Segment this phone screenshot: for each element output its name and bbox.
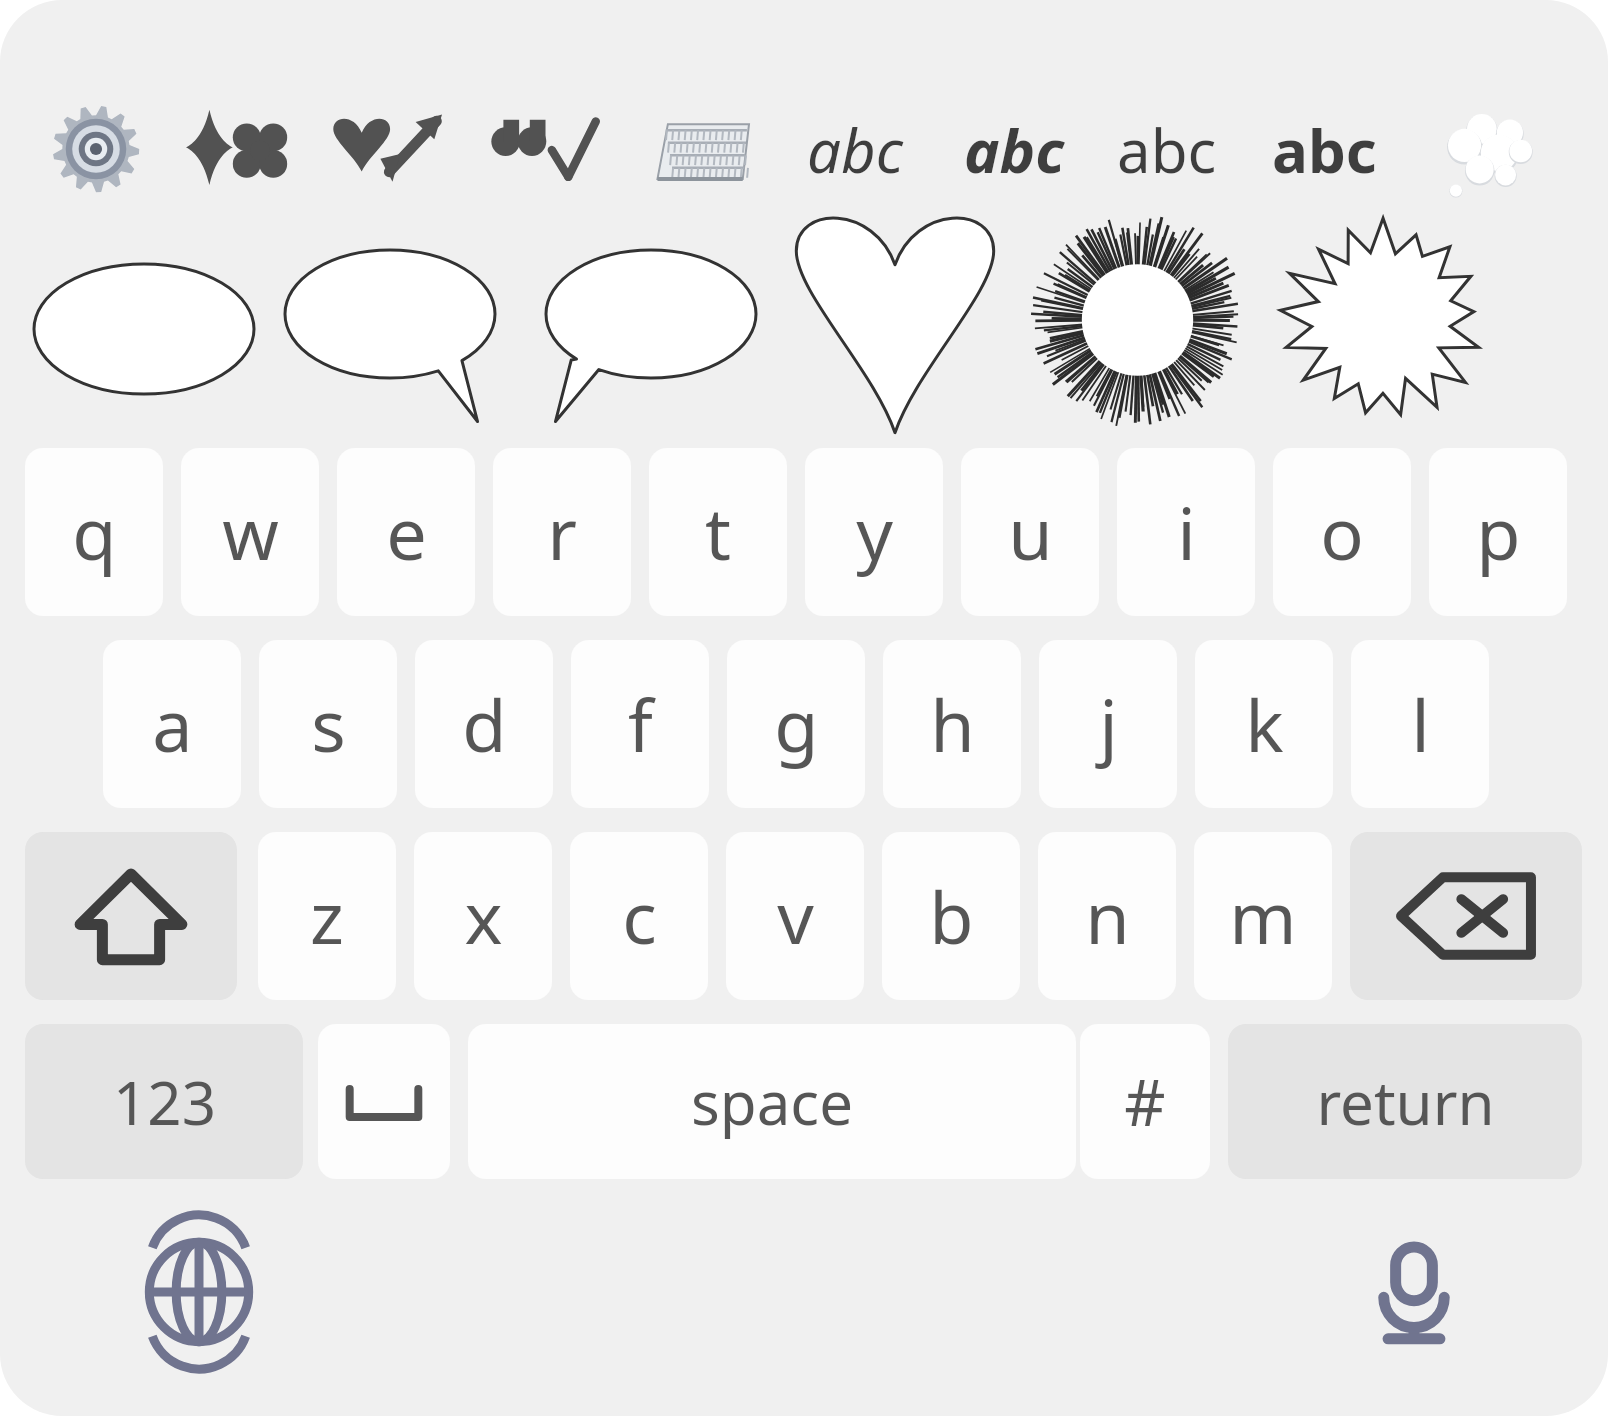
button[interactable]: i [1117,448,1255,616]
staticText: y [856,483,893,581]
button[interactable]: v [726,832,864,1000]
staticText: d [462,675,507,773]
button[interactable]: s [259,640,397,808]
button[interactable]: o [1273,448,1411,616]
staticText: k [1245,675,1284,773]
button[interactable]: Keyboard layout [645,112,749,188]
button[interactable]: abc [800,105,910,195]
button[interactable]: Grammar [488,108,598,192]
staticText: c [622,867,657,965]
button[interactable]: z [258,832,396,1000]
button[interactable]: g [727,640,865,808]
staticText: l [1411,675,1430,773]
staticText: h [930,675,975,773]
button[interactable]: 123 [25,1024,303,1179]
staticText: return [1316,1061,1495,1143]
button[interactable]: c [570,832,708,1000]
button[interactable]: Emotion [332,108,442,190]
button[interactable]: d [415,640,553,808]
staticText: f [628,675,653,773]
button[interactable]: u [961,448,1099,616]
button[interactable]: Shout bubble [1268,215,1498,425]
staticText: o [1320,483,1364,581]
button[interactable]: Backspace [1350,832,1582,1000]
button[interactable]: Speech bubble left [528,222,764,412]
button[interactable]: Plain bubble [26,222,262,412]
button[interactable]: h [883,640,1021,808]
button[interactable]: l [1351,640,1489,808]
staticText: t [705,483,731,581]
button[interactable]: Change language [145,1238,253,1346]
staticText: b [929,867,974,965]
button[interactable]: Voice input [1360,1238,1468,1350]
staticText: a [152,675,193,773]
button[interactable]: f [571,640,709,808]
button[interactable]: space [468,1024,1076,1179]
button[interactable]: a [103,640,241,808]
button[interactable]: return [1228,1024,1582,1179]
staticText: abc [1272,109,1377,191]
button[interactable]: Auto correct [183,108,293,190]
button[interactable]: r [493,448,631,616]
button[interactable]: Thought bubble [1430,105,1538,197]
button[interactable]: x [414,832,552,1000]
button[interactable]: Settings [50,103,142,195]
button[interactable]: Loud bubble [1025,215,1250,425]
staticText: m [1229,867,1297,965]
button[interactable]: p [1429,448,1567,616]
button[interactable]: q [25,448,163,616]
button[interactable]: w [181,448,319,616]
staticText: abc [807,109,903,191]
button[interactable]: y [805,448,943,616]
staticText: q [72,483,117,581]
button[interactable]: abc [1265,105,1383,195]
button[interactable]: # [1080,1024,1210,1179]
button[interactable]: Heart bubble [790,205,1000,435]
staticText: z [310,867,344,965]
staticText: v [777,867,814,965]
staticText: r [547,483,577,581]
staticText: u [1008,483,1053,581]
button[interactable]: j [1039,640,1177,808]
staticText: # [1124,1058,1166,1145]
button[interactable]: m [1194,832,1332,1000]
button[interactable]: k [1195,640,1333,808]
button[interactable]: b [882,832,1020,1000]
button[interactable]: abc [955,105,1073,195]
staticText: 123 [113,1061,216,1143]
staticText: j [1099,675,1118,773]
staticText: s [311,675,346,773]
staticText: abc [1117,109,1217,191]
staticText: space [691,1061,853,1143]
button[interactable]: e [337,448,475,616]
staticText: p [1476,483,1521,581]
button[interactable]: Speech bubble [277,222,513,412]
staticText: x [464,867,503,965]
staticText: n [1085,867,1130,965]
staticText: e [386,483,427,581]
button[interactable]: Shift [25,832,237,1000]
staticText: g [774,675,819,773]
staticText: abc [964,109,1065,191]
button[interactable]: Space bar [318,1024,450,1179]
staticText: w [222,483,279,581]
staticText: i [1177,483,1196,581]
button[interactable]: t [649,448,787,616]
button[interactable]: n [1038,832,1176,1000]
button[interactable]: abc [1112,105,1222,195]
